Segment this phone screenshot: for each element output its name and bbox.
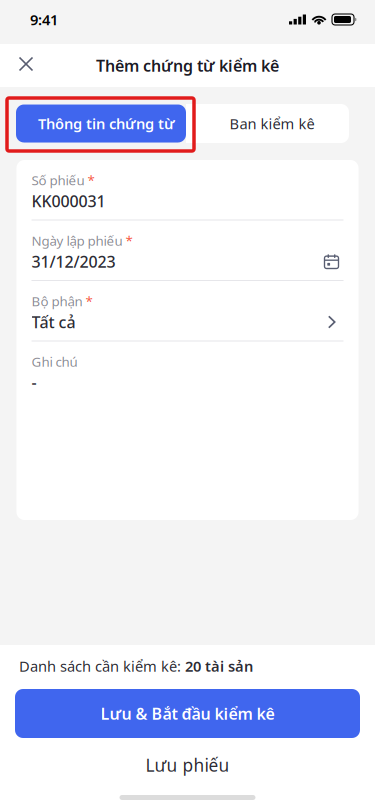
button[interactable]: Lưu phiếu xyxy=(15,743,360,787)
staticText: Ban kiểm kê xyxy=(229,114,314,133)
staticText: Lưu & Bắt đầu kiểm kê xyxy=(100,703,274,724)
staticText: Thông tin chứng từ xyxy=(38,114,175,133)
staticText: 9:41 xyxy=(30,10,58,29)
staticText: 31/12/2023 xyxy=(31,251,115,272)
staticText: KK000031 xyxy=(31,190,105,212)
button[interactable]: Thông tin chứng từ xyxy=(16,104,186,142)
staticText: Ngày lập phiếu xyxy=(31,232,122,249)
staticText: Ghi chú xyxy=(31,353,77,370)
staticText: Danh sách cần kiểm kê: xyxy=(19,656,185,676)
staticText: 20 tài sản xyxy=(185,656,253,676)
staticText: - xyxy=(31,372,36,393)
staticText: Thêm chứng từ kiểm kê xyxy=(96,55,279,76)
button[interactable]: Lưu & Bắt đầu kiểm kê xyxy=(15,689,360,738)
staticText: * xyxy=(87,171,94,189)
staticText: * xyxy=(85,292,92,310)
staticText: Bộ phận xyxy=(31,292,82,310)
staticText: Lưu phiếu xyxy=(145,753,229,776)
staticText: * xyxy=(125,232,132,249)
staticText: Tất cả xyxy=(31,311,75,333)
button[interactable]: Close xyxy=(0,44,52,87)
staticText: Số phiếu xyxy=(31,171,84,189)
button[interactable]: Ban kiểm kê xyxy=(186,104,349,143)
